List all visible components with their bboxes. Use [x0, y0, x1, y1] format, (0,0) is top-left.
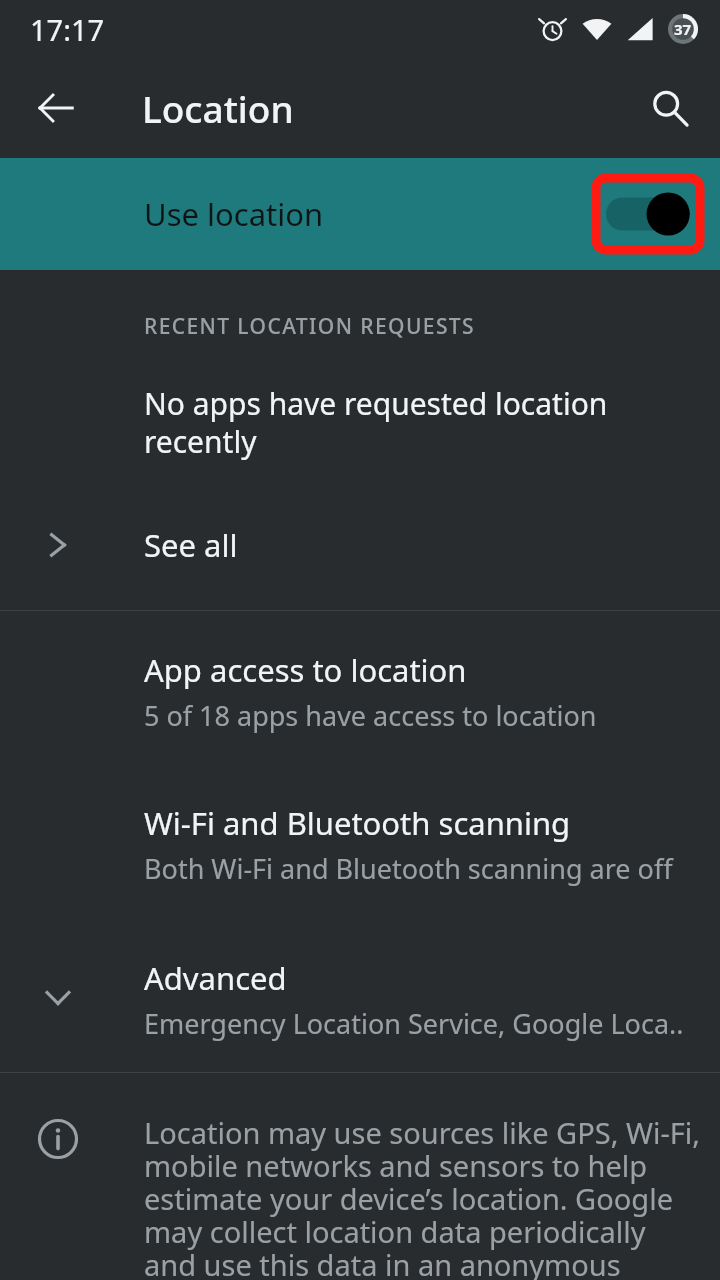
- staticText: 17:17: [30, 10, 105, 49]
- button[interactable]: App access to location: [0, 611, 720, 768]
- staticText: No apps have requested location recently: [144, 383, 608, 462]
- staticText: Wi-Fi and Bluetooth scanning: [144, 802, 571, 844]
- staticText: 37: [674, 19, 692, 39]
- staticText: Location may use sources like GPS, Wi-Fi…: [144, 1113, 701, 1280]
- button[interactable]: Back: [20, 72, 92, 144]
- button[interactable]: Advanced: [0, 921, 720, 1072]
- staticText: Emergency Location Service, Google Loca.…: [144, 1005, 684, 1042]
- button[interactable]: Search: [634, 72, 706, 144]
- button[interactable]: See all: [0, 510, 720, 580]
- staticText: 5 of 18 apps have access to location: [144, 697, 597, 734]
- staticText: Use location: [144, 193, 324, 235]
- button[interactable]: Use location: [0, 158, 720, 270]
- staticText: RECENT LOCATION REQUESTS: [144, 312, 476, 341]
- button[interactable]: Wi-Fi and Bluetooth scanning: [0, 768, 720, 921]
- staticText: Both Wi-Fi and Bluetooth scanning are of…: [144, 850, 673, 887]
- staticText: Location: [142, 83, 294, 133]
- staticText: See all: [144, 524, 238, 566]
- staticText: App access to location: [144, 649, 467, 691]
- staticText: Advanced: [144, 957, 287, 999]
